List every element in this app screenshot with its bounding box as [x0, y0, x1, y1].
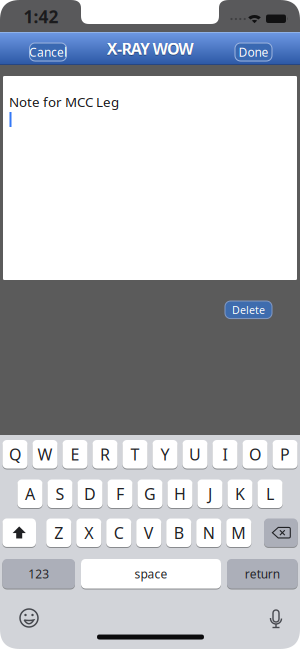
staticText: S: [55, 483, 64, 504]
staticText: B: [174, 522, 184, 543]
staticText: K: [235, 483, 245, 504]
button[interactable]: H: [167, 479, 193, 508]
button[interactable]: P: [272, 439, 298, 469]
staticText: X: [84, 522, 93, 543]
button[interactable]: Emoji: [12, 601, 46, 635]
staticText: Z: [54, 522, 63, 543]
staticText: V: [144, 522, 154, 543]
button[interactable]: R: [92, 439, 118, 469]
staticText: I: [222, 444, 227, 465]
staticText: return: [245, 566, 280, 582]
staticText: Y: [160, 444, 169, 465]
button[interactable]: W: [32, 439, 58, 469]
button[interactable]: T: [122, 439, 148, 469]
button[interactable]: U: [182, 439, 208, 469]
staticText: X-RAY WOW: [107, 38, 193, 59]
staticText: H: [174, 483, 186, 504]
staticText: W: [37, 444, 52, 465]
button[interactable]: C: [106, 518, 131, 547]
button[interactable]: F: [107, 479, 133, 508]
button[interactable]: A: [17, 479, 43, 508]
staticText: C: [114, 522, 124, 543]
staticText: Q: [9, 444, 21, 465]
staticText: E: [70, 444, 79, 465]
staticText: 123: [28, 566, 49, 582]
button[interactable]: Done: [235, 43, 272, 61]
staticText: Note for MCC Leg: [9, 93, 119, 111]
button[interactable]: Shift: [2, 518, 36, 547]
button[interactable]: B: [166, 518, 191, 547]
staticText: O: [249, 444, 261, 465]
button[interactable]: Q: [2, 439, 28, 469]
button[interactable]: Cancel: [29, 43, 66, 61]
button[interactable]: 123: [2, 558, 75, 589]
staticText: J: [208, 483, 212, 504]
staticText: M: [231, 522, 246, 543]
button[interactable]: S: [47, 479, 73, 508]
button[interactable]: O: [242, 439, 268, 469]
button[interactable]: L: [257, 479, 283, 508]
button[interactable]: X: [76, 518, 101, 547]
button[interactable]: space: [81, 558, 221, 589]
staticText: X-RAY WOW: [107, 39, 193, 60]
staticText: N: [203, 522, 215, 543]
staticText: R: [100, 444, 110, 465]
staticText: G: [144, 483, 156, 504]
button[interactable]: Y: [152, 439, 178, 469]
button[interactable]: Z: [46, 518, 71, 547]
button[interactable]: D: [77, 479, 103, 508]
staticText: T: [130, 444, 139, 465]
button[interactable]: I: [212, 439, 238, 469]
button[interactable]: V: [136, 518, 161, 547]
staticText: F: [116, 483, 124, 504]
staticText: P: [280, 444, 290, 465]
staticText: Done: [238, 44, 268, 60]
button[interactable]: Delete character: [264, 518, 298, 547]
button[interactable]: N: [196, 518, 221, 547]
staticText: D: [84, 483, 96, 504]
staticText: Cancel: [29, 44, 67, 60]
staticText: 1:42: [23, 5, 58, 28]
staticText: A: [25, 483, 35, 504]
button[interactable]: K: [227, 479, 253, 508]
staticText: Delete: [232, 303, 265, 317]
button[interactable]: M: [226, 518, 251, 547]
staticText: space: [134, 566, 167, 582]
staticText: U: [189, 444, 201, 465]
button[interactable]: J: [197, 479, 223, 508]
button[interactable]: Dictate: [259, 604, 293, 634]
button[interactable]: G: [137, 479, 163, 508]
staticText: L: [266, 483, 274, 504]
button[interactable]: return: [227, 558, 298, 589]
button[interactable]: E: [62, 439, 88, 469]
button[interactable]: Delete: [225, 301, 272, 319]
